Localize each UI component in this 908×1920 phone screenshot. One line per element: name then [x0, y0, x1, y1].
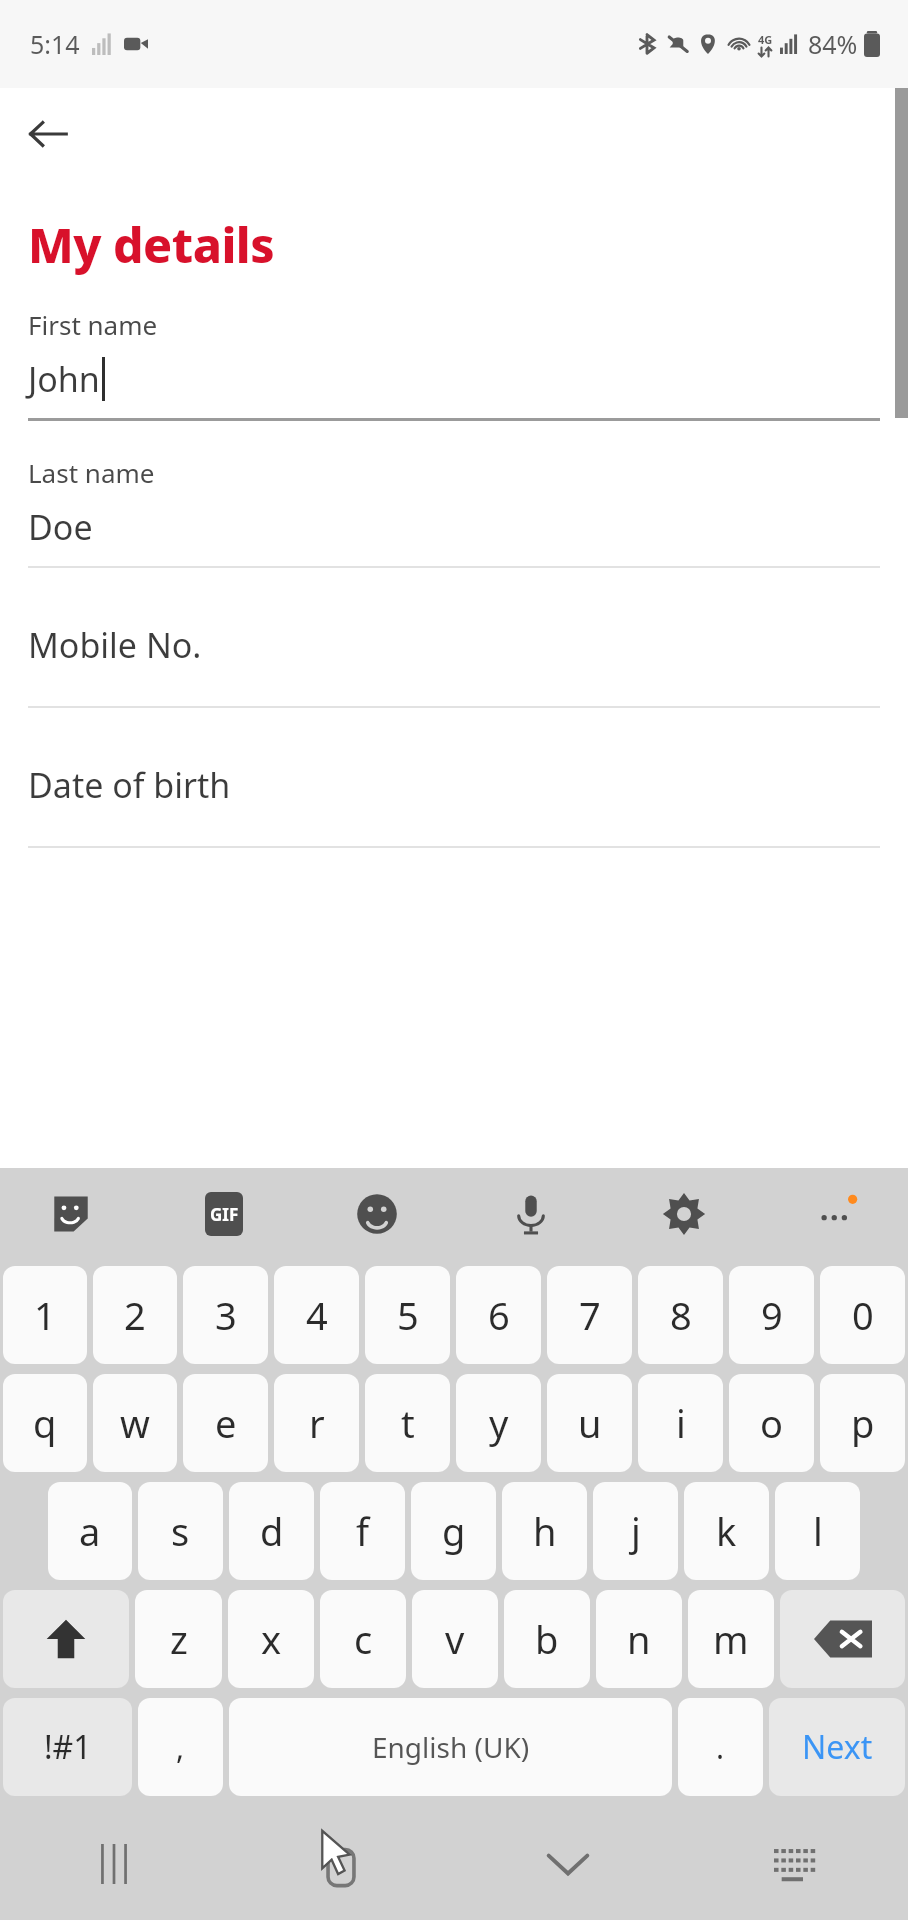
button[interactable]: Backspace — [780, 1590, 905, 1688]
staticText: John — [28, 356, 100, 402]
button[interactable]: 9 — [729, 1266, 814, 1364]
staticText: x — [261, 1613, 282, 1665]
button[interactable]: n — [596, 1590, 682, 1688]
staticText: Next — [802, 1725, 873, 1769]
button[interactable]: GIF — [197, 1187, 251, 1241]
staticText: k — [716, 1505, 737, 1557]
staticText: b — [535, 1613, 559, 1665]
button[interactable]: e — [183, 1374, 268, 1472]
button[interactable]: w — [93, 1374, 177, 1472]
staticText: Date of birth — [28, 762, 231, 808]
button[interactable]: More options — [810, 1187, 864, 1241]
staticText: 5 — [397, 1289, 419, 1341]
staticText: m — [713, 1613, 749, 1665]
button[interactable]: Recents — [78, 1828, 150, 1900]
button[interactable]: Switch keyboard — [759, 1828, 831, 1900]
button[interactable]: 6 — [456, 1266, 541, 1364]
button[interactable]: Next — [769, 1698, 905, 1796]
staticText: 84% — [808, 27, 858, 61]
button[interactable]: z — [135, 1590, 222, 1688]
staticText: 4G — [758, 32, 773, 47]
button[interactable]: t — [365, 1374, 450, 1472]
staticText: GIF — [210, 1203, 239, 1226]
staticText: Last name — [28, 455, 155, 490]
staticText: f — [356, 1505, 370, 1557]
button[interactable]: 2 — [93, 1266, 177, 1364]
button[interactable]: b — [504, 1590, 590, 1688]
button[interactable]: Hide keyboard — [532, 1828, 604, 1900]
button[interactable]: Keyboard settings — [657, 1187, 711, 1241]
button[interactable]: s — [138, 1482, 223, 1580]
staticText: t — [401, 1397, 415, 1449]
button[interactable]: r — [274, 1374, 359, 1472]
button[interactable]: 5 — [365, 1266, 450, 1364]
button[interactable]: Back — [14, 100, 82, 168]
staticText: r — [309, 1397, 325, 1449]
staticText: !#1 — [44, 1725, 92, 1769]
button[interactable]: x — [228, 1590, 314, 1688]
button[interactable]: Voice input — [504, 1187, 558, 1241]
button[interactable]: 8 — [638, 1266, 723, 1364]
staticText: c — [354, 1613, 373, 1665]
staticText: Mobile No. — [28, 622, 202, 668]
button[interactable]: m — [688, 1590, 774, 1688]
button[interactable]: h — [502, 1482, 587, 1580]
staticText: First name — [28, 307, 158, 342]
button[interactable]: p — [820, 1374, 905, 1472]
button[interactable]: l — [775, 1482, 860, 1580]
button[interactable]: Home — [299, 1822, 383, 1906]
button[interactable]: o — [729, 1374, 814, 1472]
button[interactable]: j — [593, 1482, 678, 1580]
staticText: z — [170, 1613, 188, 1665]
button[interactable]: u — [547, 1374, 632, 1472]
button[interactable]: 3 — [183, 1266, 268, 1364]
staticText: l — [813, 1505, 823, 1557]
staticText: o — [760, 1397, 783, 1449]
button[interactable]: 7 — [547, 1266, 632, 1364]
button[interactable]: . — [678, 1698, 763, 1796]
button[interactable]: v — [412, 1590, 498, 1688]
staticText: v — [445, 1613, 465, 1665]
staticText: Doe — [28, 504, 93, 550]
staticText: g — [442, 1505, 466, 1557]
staticText: 6 — [488, 1289, 510, 1341]
button[interactable]: , — [138, 1698, 223, 1796]
button[interactable]: Emoji — [350, 1187, 404, 1241]
staticText: y — [489, 1397, 509, 1449]
staticText: h — [533, 1505, 557, 1557]
staticText: q — [33, 1397, 57, 1449]
button[interactable]: Date of birth — [0, 762, 908, 848]
button[interactable]: Stickers — [44, 1187, 98, 1241]
button[interactable]: English (UK) — [229, 1698, 672, 1796]
button[interactable]: 4 — [274, 1266, 359, 1364]
button[interactable]: a — [48, 1482, 132, 1580]
button[interactable]: i — [638, 1374, 723, 1472]
staticText: d — [260, 1505, 284, 1557]
staticText: 9 — [761, 1289, 783, 1341]
button[interactable]: Shift — [3, 1590, 129, 1688]
button[interactable]: y — [456, 1374, 541, 1472]
button[interactable]: Mobile No. — [0, 622, 908, 708]
button[interactable]: q — [3, 1374, 87, 1472]
button[interactable]: !#1 — [3, 1698, 132, 1796]
staticText: 7 — [579, 1289, 601, 1341]
staticText: 8 — [670, 1289, 692, 1341]
button[interactable]: g — [411, 1482, 496, 1580]
staticText: English (UK) — [372, 1728, 530, 1766]
button[interactable]: Last name — [0, 455, 908, 568]
button[interactable]: k — [684, 1482, 769, 1580]
button[interactable]: First name — [0, 307, 908, 421]
staticText: 5:14 — [30, 27, 80, 61]
button[interactable]: 0 — [820, 1266, 905, 1364]
staticText: n — [627, 1613, 651, 1665]
button[interactable]: f — [320, 1482, 405, 1580]
staticText: s — [171, 1505, 190, 1557]
button[interactable]: c — [320, 1590, 406, 1688]
staticText: My details — [28, 212, 275, 277]
staticText: i — [676, 1397, 686, 1449]
staticText: , — [176, 1727, 185, 1768]
staticText: j — [631, 1505, 641, 1557]
staticText: 2 — [124, 1289, 146, 1341]
button[interactable]: d — [229, 1482, 314, 1580]
button[interactable]: 1 — [3, 1266, 87, 1364]
